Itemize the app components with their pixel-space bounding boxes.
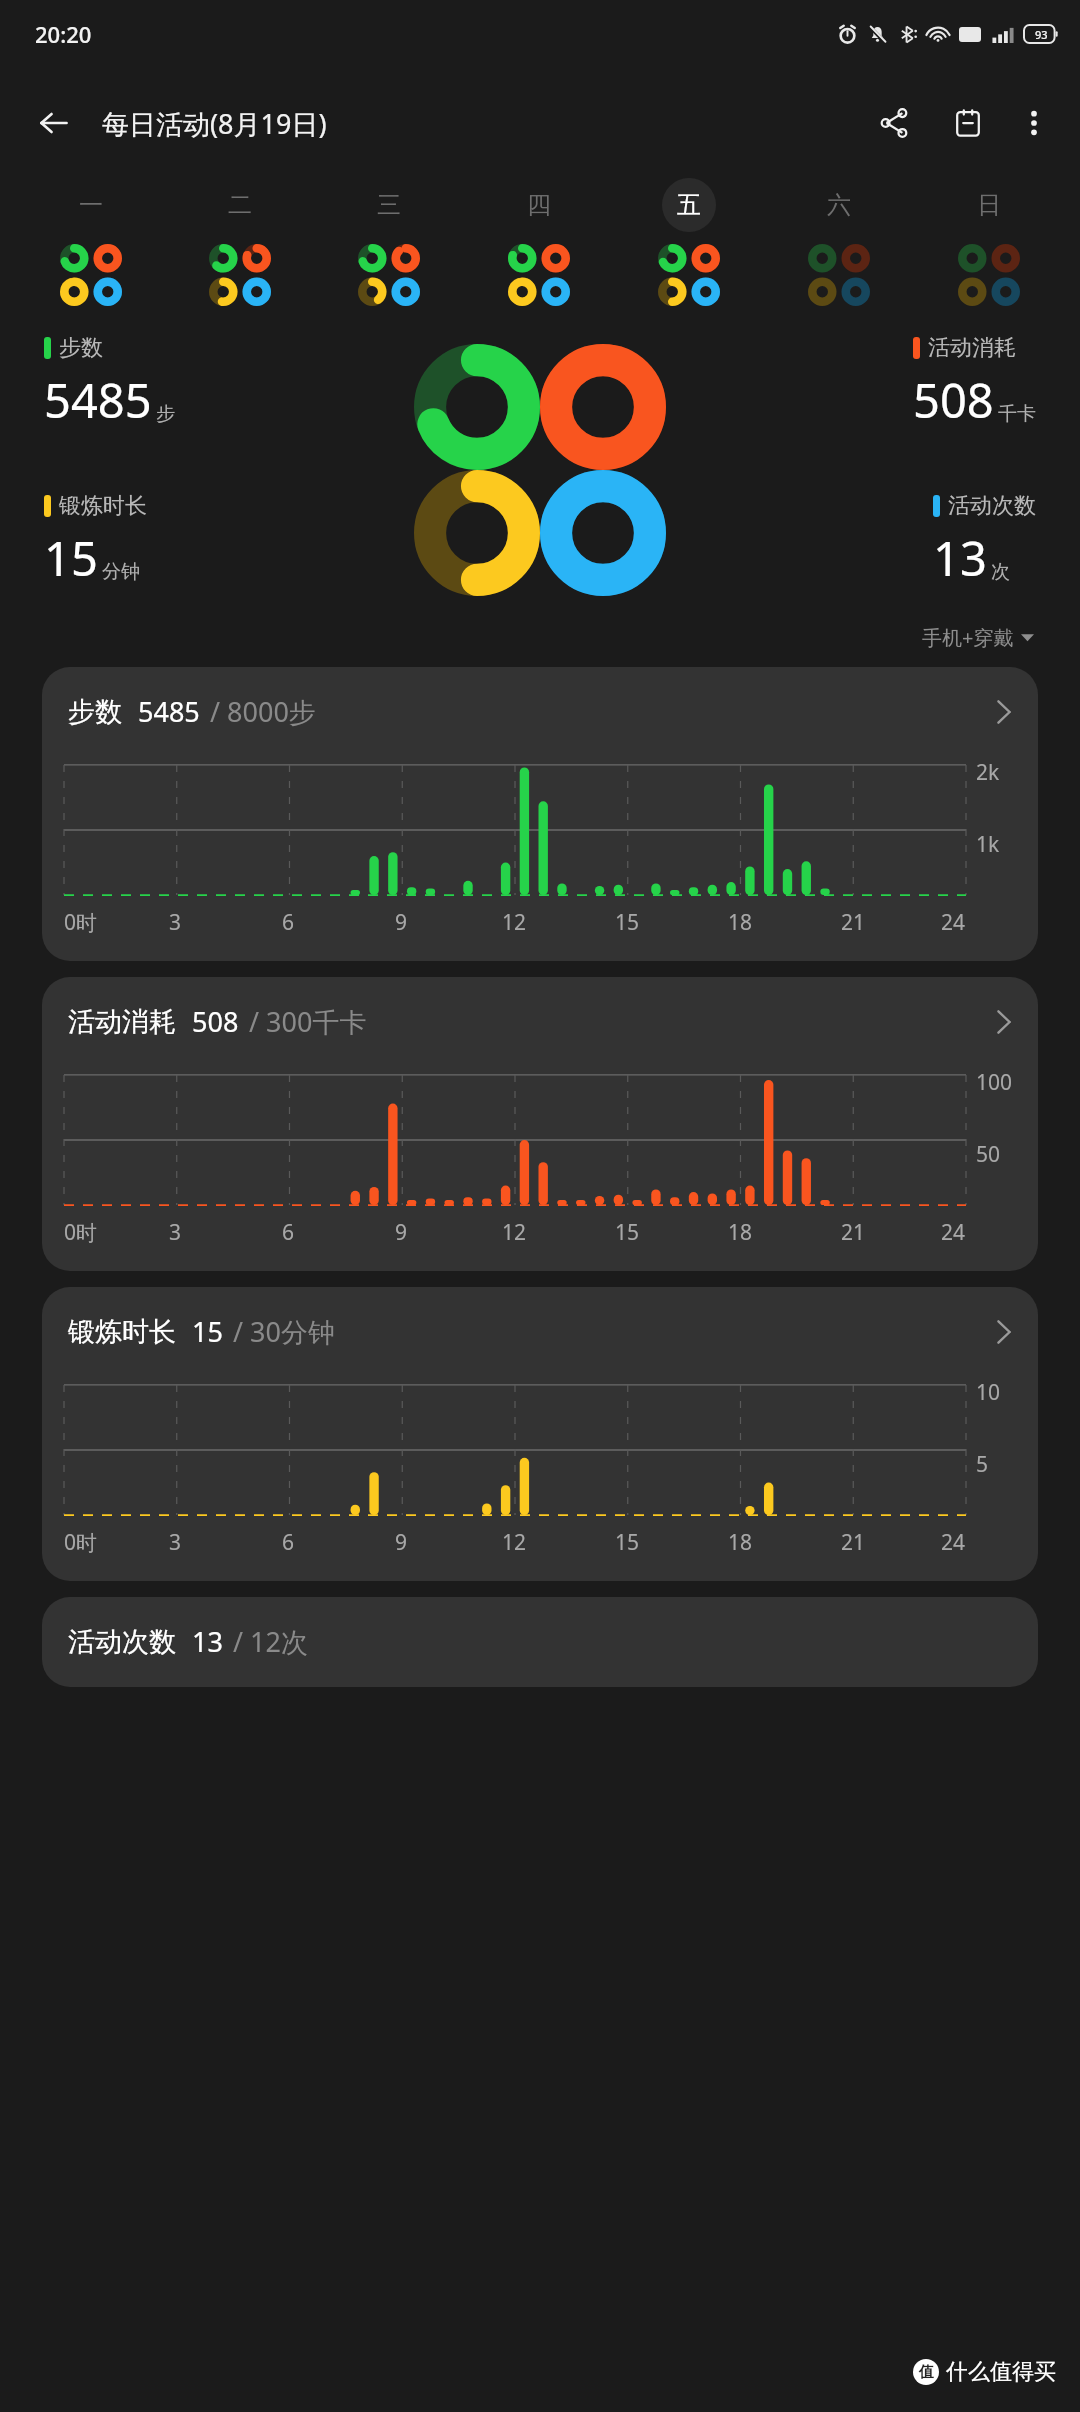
staticText: 15 — [615, 1528, 640, 1557]
staticText: / 8000步 — [210, 693, 316, 730]
staticText: 13 — [933, 526, 987, 590]
button[interactable]: 二 — [165, 178, 314, 306]
staticText: 五 — [677, 190, 701, 220]
staticText: 活动次数 — [948, 492, 1036, 520]
staticText: 5485 — [138, 693, 200, 730]
staticText: 活动消耗 — [68, 1005, 176, 1039]
staticText: 每日活动(8月19日) — [102, 105, 327, 142]
staticText: 9 — [395, 1218, 408, 1247]
staticText: 12 — [502, 908, 527, 937]
staticText: 24 — [941, 1218, 966, 1247]
staticText: 15 — [44, 526, 98, 590]
staticText: 手机+穿戴 — [922, 624, 1014, 651]
staticText: 508 — [913, 368, 994, 432]
button[interactable]: Records — [938, 93, 998, 153]
staticText: 21 — [841, 908, 866, 937]
staticText: 活动消耗 — [928, 334, 1016, 362]
button[interactable]: 五 — [614, 178, 764, 306]
staticText: 步数 — [59, 334, 103, 362]
staticText: 0时 — [64, 908, 98, 937]
staticText: 21 — [841, 1218, 866, 1247]
staticText: 12 — [502, 1218, 527, 1247]
staticText: 二 — [228, 190, 252, 220]
staticText: / 300千卡 — [249, 1003, 367, 1040]
staticText: 四 — [527, 190, 551, 220]
staticText: 次 — [991, 560, 1010, 584]
button[interactable]: 活动次数 — [42, 1597, 1038, 1687]
staticText: 0时 — [64, 1218, 98, 1247]
staticText: 15 — [615, 1218, 640, 1247]
staticText: 5485 — [44, 368, 152, 432]
staticText: / 12次 — [233, 1623, 308, 1660]
staticText: 21 — [841, 1528, 866, 1557]
button[interactable]: More options — [1006, 95, 1062, 151]
staticText: 15 — [192, 1313, 223, 1350]
staticText: 50 — [976, 1140, 1001, 1169]
staticText: 93 — [1035, 27, 1048, 42]
staticText: 508 — [192, 1003, 239, 1040]
staticText: 10 — [976, 1378, 1001, 1407]
button[interactable]: Back — [26, 95, 82, 151]
button[interactable]: 手机+穿戴 — [918, 620, 1038, 655]
staticText: 15 — [615, 908, 640, 937]
button[interactable]: 步数 — [42, 667, 1038, 961]
staticText: 千卡 — [998, 402, 1036, 426]
staticText: 9 — [395, 1528, 408, 1557]
staticText: 三 — [377, 190, 401, 220]
staticText: 1k — [976, 830, 1000, 859]
staticText: 6 — [282, 1218, 295, 1247]
staticText: 9 — [395, 908, 408, 937]
staticText: 什么值得买 — [946, 2358, 1056, 2386]
staticText: 5 — [976, 1450, 989, 1479]
button[interactable]: 四 — [464, 178, 614, 306]
staticText: 活动次数 — [68, 1625, 176, 1659]
staticText: 锻炼时长 — [59, 492, 147, 520]
button[interactable]: 日 — [914, 178, 1064, 306]
staticText: / 30分钟 — [233, 1313, 335, 1350]
staticText: 24 — [941, 908, 966, 937]
staticText: 18 — [728, 1528, 753, 1557]
button[interactable]: 六 — [764, 178, 914, 306]
staticText: 3 — [169, 1528, 182, 1557]
staticText: 步数 — [68, 695, 122, 729]
button[interactable]: 三 — [314, 178, 464, 306]
staticText: 六 — [827, 190, 851, 220]
button[interactable]: 活动消耗 — [42, 977, 1038, 1271]
staticText: 3 — [169, 1218, 182, 1247]
button[interactable]: Share — [864, 93, 924, 153]
staticText: 18 — [728, 1218, 753, 1247]
staticText: 18 — [728, 908, 753, 937]
button[interactable]: 一 — [16, 178, 165, 306]
staticText: 100 — [976, 1068, 1013, 1097]
staticText: 值 — [919, 2363, 934, 2382]
button[interactable]: 锻炼时长 — [42, 1287, 1038, 1581]
staticText: 6 — [282, 908, 295, 937]
staticText: 锻炼时长 — [68, 1315, 176, 1349]
staticText: 13 — [192, 1623, 223, 1660]
staticText: 日 — [977, 190, 1001, 220]
staticText: 6 — [282, 1528, 295, 1557]
staticText: 分钟 — [102, 560, 140, 584]
staticText: 12 — [502, 1528, 527, 1557]
staticText: 24 — [941, 1528, 966, 1557]
staticText: 步 — [156, 402, 175, 426]
staticText: 20:20 — [35, 19, 92, 49]
staticText: 2k — [976, 758, 1000, 787]
staticText: 0时 — [64, 1528, 98, 1557]
staticText: 3 — [169, 908, 182, 937]
staticText: 一 — [79, 190, 103, 220]
